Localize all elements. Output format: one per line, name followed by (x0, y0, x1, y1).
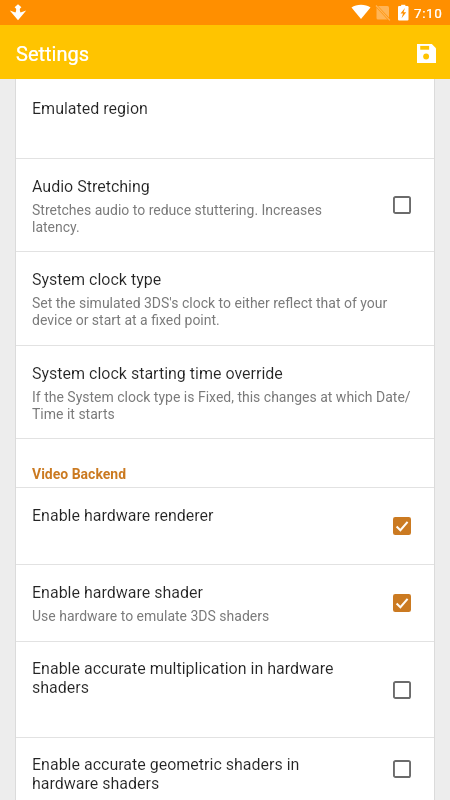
button[interactable]: Unchecked (382, 185, 422, 225)
button[interactable]: Enable hardware shader (16, 565, 434, 641)
staticText: Video Backend (32, 466, 127, 482)
staticText: System clock starting time override (32, 364, 283, 383)
staticText: Use hardware to emulate 3DS shaders (32, 608, 270, 624)
button[interactable]: System clock starting time override (16, 346, 434, 438)
button[interactable]: System clock type (16, 252, 434, 345)
button[interactable]: Checked (382, 583, 422, 623)
staticText: Enable hardware shader (32, 583, 203, 602)
staticText: Enable accurate geometric shaders in har… (32, 755, 358, 793)
button[interactable]: Save (404, 30, 448, 74)
staticText: If the System clock type is Fixed, this … (32, 389, 418, 423)
staticText: Enable accurate multiplication in hardwa… (32, 659, 358, 697)
button[interactable]: Enable accurate geometric shaders in har… (16, 738, 434, 800)
staticText: Stretches audio to reduce stuttering. In… (32, 202, 358, 236)
button[interactable]: Checked (382, 506, 422, 546)
button[interactable]: Enable accurate multiplication in hardwa… (16, 642, 434, 737)
button[interactable]: Unchecked (382, 670, 422, 710)
staticText: Emulated region (32, 99, 148, 118)
staticText: System clock type (32, 270, 162, 289)
button[interactable]: Enable hardware renderer (16, 488, 434, 564)
button[interactable]: Emulated region (16, 79, 434, 158)
staticText: Enable hardware renderer (32, 506, 214, 525)
button[interactable]: Audio Stretching (16, 159, 434, 251)
staticText: Settings (16, 42, 90, 65)
button[interactable]: Unchecked (382, 749, 422, 789)
staticText: Audio Stretching (32, 177, 150, 196)
staticText: Set the simulated 3DS's clock to either … (32, 295, 418, 329)
staticText: 7:10 (414, 5, 443, 21)
